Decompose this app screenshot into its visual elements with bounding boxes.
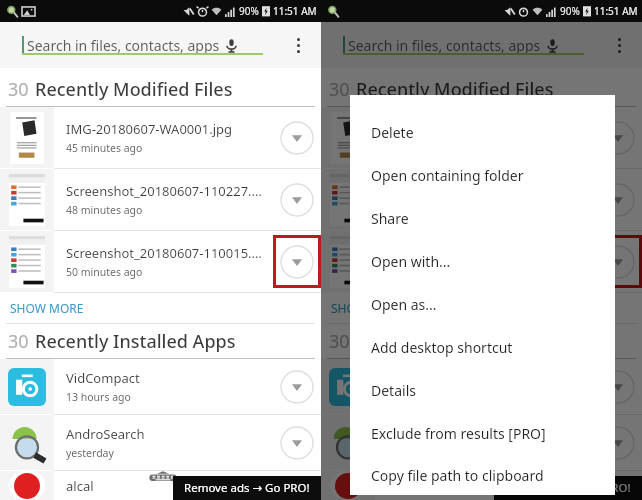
button[interactable]: Item options (601, 245, 635, 279)
button[interactable]: AndroSearch (0, 415, 321, 470)
button[interactable]: Item options (280, 245, 314, 279)
staticText: Exclude from results [PRO] (371, 424, 546, 443)
staticText: 45 minutes ago (66, 141, 143, 155)
button[interactable]: Item options (601, 121, 635, 155)
staticText: Open as... (371, 295, 437, 314)
button[interactable]: Exclude from results [PRO] (350, 412, 615, 455)
button[interactable]: Item options (601, 426, 635, 460)
staticText: Open with... (371, 252, 451, 271)
staticText: Recently Modified Files (35, 77, 233, 102)
button[interactable]: Item options (601, 183, 635, 217)
staticText: 13 hours ago (66, 390, 131, 404)
button[interactable]: Share (350, 197, 615, 240)
button[interactable]: Add desktop shortcut (350, 326, 615, 369)
button[interactable]: Item options (280, 183, 314, 217)
button[interactable]: Item options (280, 370, 314, 404)
button[interactable]: Screenshot_20180607-110015.png (0, 231, 321, 292)
button[interactable]: Item options (280, 121, 314, 155)
button[interactable]: Delete (350, 111, 615, 154)
button[interactable]: AndroSearch (321, 415, 642, 470)
staticText: Screenshot_20180607-110227.png (387, 182, 590, 200)
button[interactable]: VidCompact (0, 359, 321, 414)
button[interactable]: IMG-20180607-WA0001.jpg (0, 107, 321, 168)
button[interactable]: IMG-20180607-WA0001.jpg (321, 107, 642, 168)
staticText: Search in files, contacts, apps (348, 36, 541, 55)
staticText: Screenshot_20180607-110015.png (387, 244, 590, 262)
staticText: yesterday (66, 446, 114, 460)
staticText: Remove ads → Go PRO! (505, 480, 631, 496)
staticText: 90% (239, 4, 259, 18)
staticText: Remove ads → Go PRO! (184, 480, 310, 496)
button[interactable]: Search in files, contacts, apps (343, 36, 602, 55)
button[interactable]: Copy file path to clipboard (350, 455, 615, 495)
other: Hide keyboard (467, 471, 501, 482)
other: Voice search (224, 38, 239, 53)
staticText: Recently Modified Files (356, 77, 554, 102)
staticText: 48 minutes ago (66, 203, 143, 217)
button[interactable]: Item options (601, 370, 635, 404)
button[interactable]: Screenshot_20180607-110015.png (321, 231, 642, 292)
button[interactable]: More options (281, 28, 315, 62)
staticText: 30 (8, 77, 29, 102)
staticText: 13 hours ago (387, 390, 452, 404)
staticText: 11:51 AM (594, 4, 638, 18)
button[interactable]: Screenshot_20180607-110227.png (0, 169, 321, 230)
staticText: 11:51 AM (594, 4, 638, 18)
staticText: Add desktop shortcut (371, 338, 513, 357)
button[interactable]: Item options (280, 426, 314, 460)
staticText: IMG-20180607-WA0001.jpg (66, 120, 232, 138)
button[interactable]: Remove ads → Go PRO! (173, 476, 321, 500)
staticText: VidCompact (66, 369, 140, 387)
staticText: Screenshot_20180607-110015.png (66, 244, 269, 262)
staticText: IMG-20180607-WA0001.jpg (387, 120, 553, 138)
staticText: 90% (560, 4, 580, 18)
button[interactable]: SHOW MORE (0, 293, 321, 323)
staticText: 30 (8, 329, 29, 354)
other: Voice search (545, 38, 560, 53)
staticText: Copy file path to clipboard (371, 466, 544, 485)
button[interactable]: Open with... (350, 240, 615, 283)
staticText: Recently Installed Apps (35, 329, 236, 354)
staticText: 48 minutes ago (387, 203, 464, 217)
staticText: 30 (329, 77, 350, 102)
button[interactable]: Remove ads → Go PRO! (494, 476, 642, 500)
button[interactable]: Open as... (350, 283, 615, 326)
staticText: 11:51 AM (273, 4, 317, 18)
staticText: 90% (560, 4, 580, 18)
staticText: VidCompact (387, 369, 461, 387)
other: Hide keyboard (146, 471, 180, 482)
button[interactable]: More options (602, 28, 636, 62)
staticText: Recently Installed Apps (356, 329, 557, 354)
staticText: AndroSearch (66, 425, 145, 443)
button[interactable]: VidCompact (321, 359, 642, 414)
staticText: alcal (387, 477, 415, 495)
button[interactable]: Screenshot_20180607-110227.png (321, 169, 642, 230)
staticText: 50 minutes ago (66, 265, 143, 279)
staticText: Screenshot_20180607-110227.png (66, 182, 269, 200)
button[interactable]: Search in files, contacts, apps (22, 36, 281, 55)
staticText: 50 minutes ago (387, 265, 464, 279)
staticText: Delete (371, 123, 414, 142)
staticText: Share (371, 209, 409, 228)
staticText: alcal (66, 477, 94, 495)
staticText: Details (371, 381, 416, 400)
staticText: Open containing folder (371, 166, 524, 185)
staticText: SHOW MORE (10, 300, 84, 316)
button[interactable]: Details (350, 369, 615, 412)
button[interactable]: Open containing folder (350, 154, 615, 197)
staticText: AndroSearch (387, 425, 466, 443)
staticText: SHOW MORE (331, 300, 405, 316)
staticText: 30 (329, 329, 350, 354)
button[interactable]: SHOW MORE (321, 293, 642, 323)
staticText: Search in files, contacts, apps (27, 36, 220, 55)
